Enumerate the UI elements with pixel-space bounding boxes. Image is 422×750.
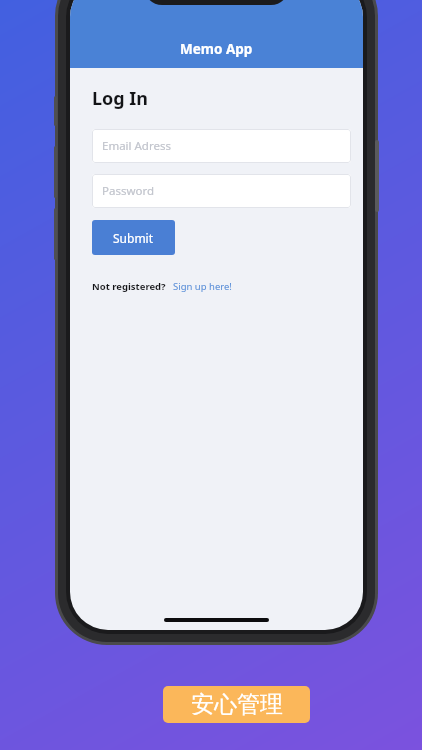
staticText: Log In <box>92 86 149 111</box>
staticText: Email Adress <box>102 138 171 154</box>
staticText: Memo App <box>180 40 253 58</box>
staticText: 安心管理 <box>191 690 283 719</box>
staticText: Submit <box>113 230 154 246</box>
staticText: Not registered? <box>92 280 166 293</box>
button[interactable]: Sign up here! <box>173 280 232 293</box>
button[interactable]: Submit <box>92 220 175 255</box>
button[interactable]: Password <box>92 174 351 208</box>
staticText: Sign up here! <box>173 280 232 293</box>
button[interactable]: Email Adress <box>92 129 351 163</box>
button[interactable]: 安心管理 <box>163 686 310 723</box>
staticText: Password <box>102 183 155 199</box>
